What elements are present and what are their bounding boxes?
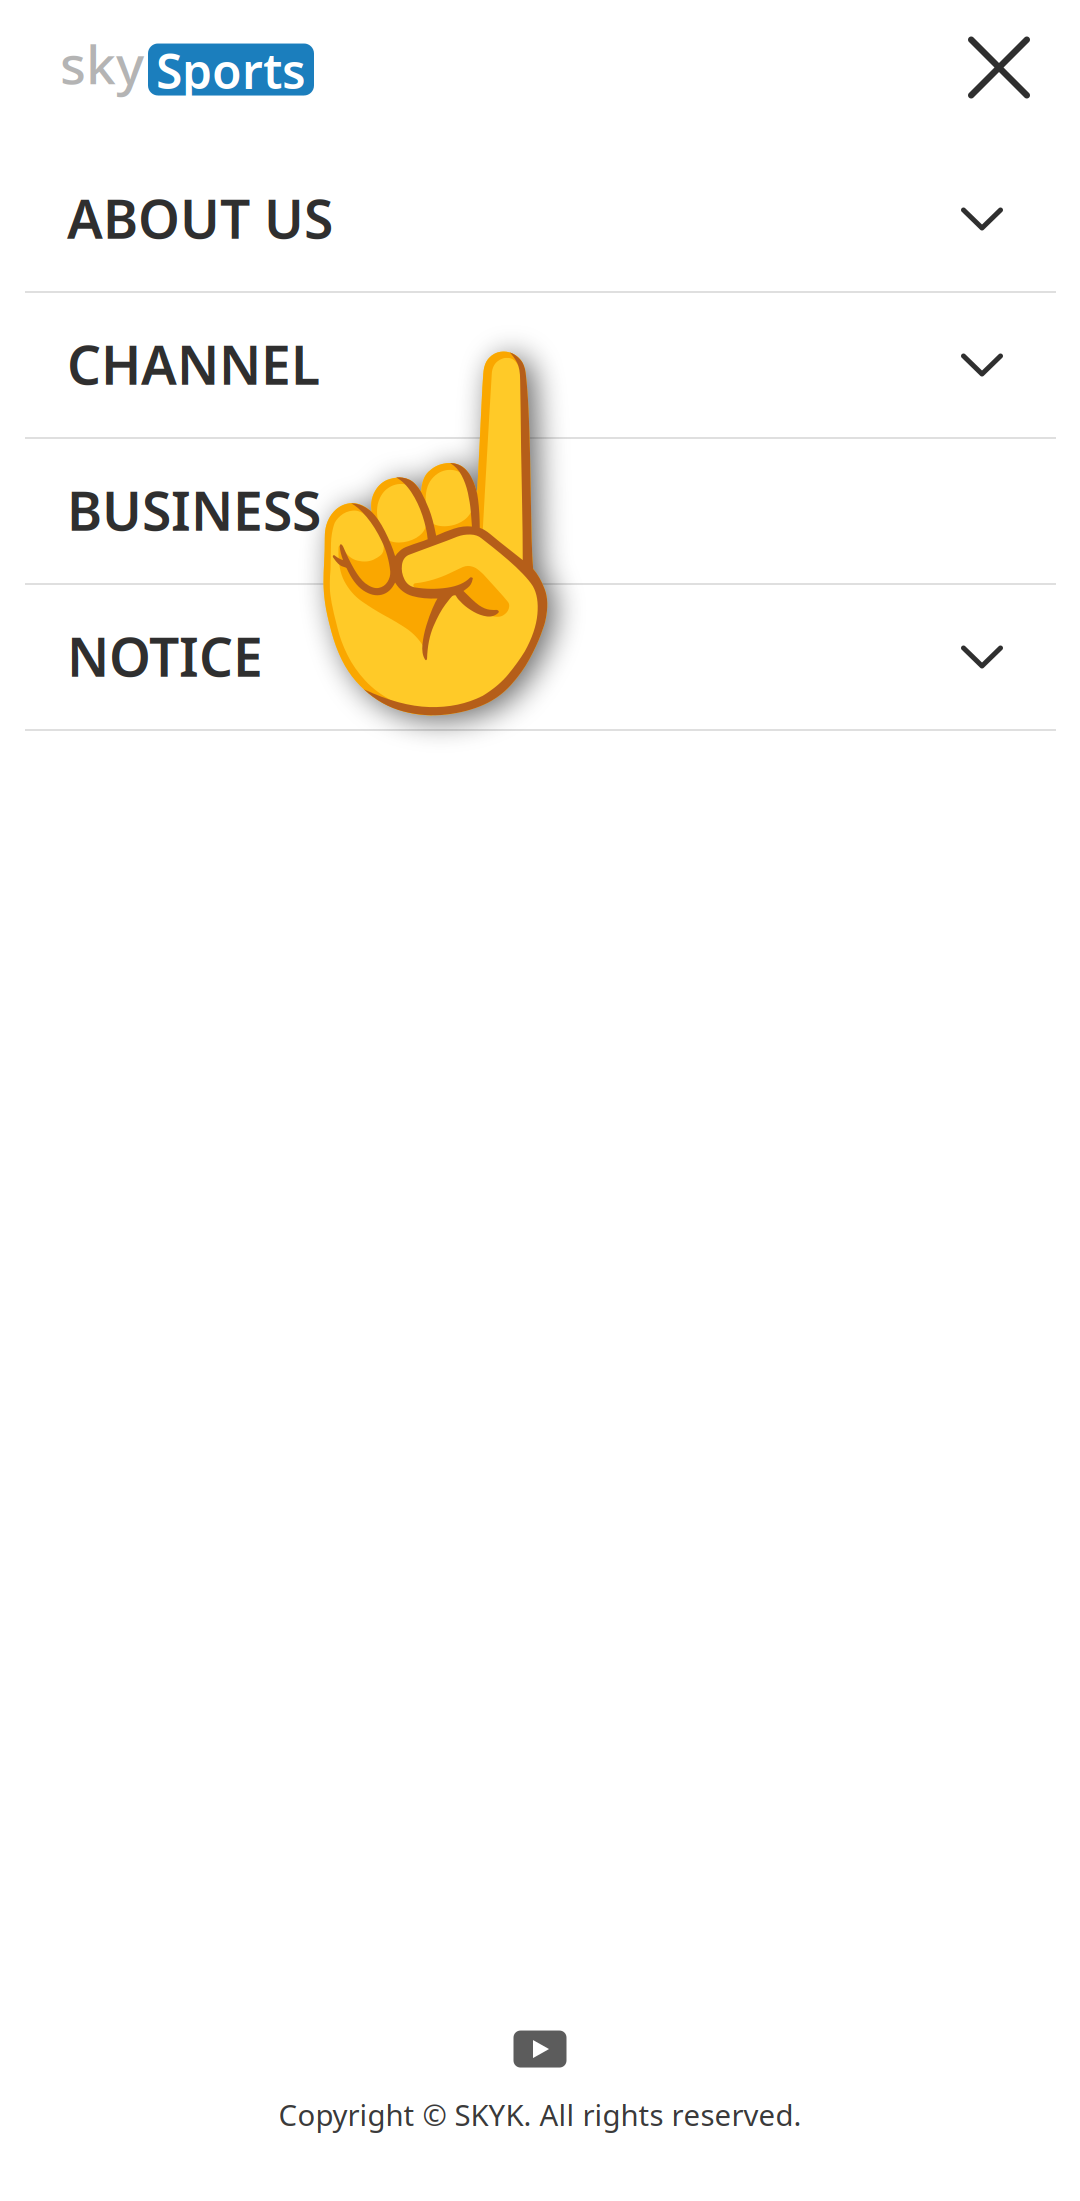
staticText: BUSINESS xyxy=(67,475,321,545)
staticText: CHANNEL xyxy=(67,329,320,399)
button[interactable]: Close xyxy=(968,42,1030,104)
staticText: Copyright © SKYK. All rights reserved. xyxy=(278,2095,801,2134)
staticText: ☝️ xyxy=(233,343,648,723)
button[interactable]: ABOUT US xyxy=(0,147,1080,293)
button[interactable]: sky Sports xyxy=(60,38,314,109)
staticText: ABOUT US xyxy=(67,183,333,253)
button[interactable]: CHANNEL xyxy=(0,293,1080,439)
button[interactable]: BUSINESS xyxy=(0,439,1080,585)
button[interactable]: YouTube xyxy=(507,2025,573,2073)
button[interactable]: NOTICE xyxy=(0,585,1080,731)
staticText: NOTICE xyxy=(67,621,263,691)
staticText: sky xyxy=(60,28,144,99)
staticText: Sports xyxy=(156,39,306,102)
